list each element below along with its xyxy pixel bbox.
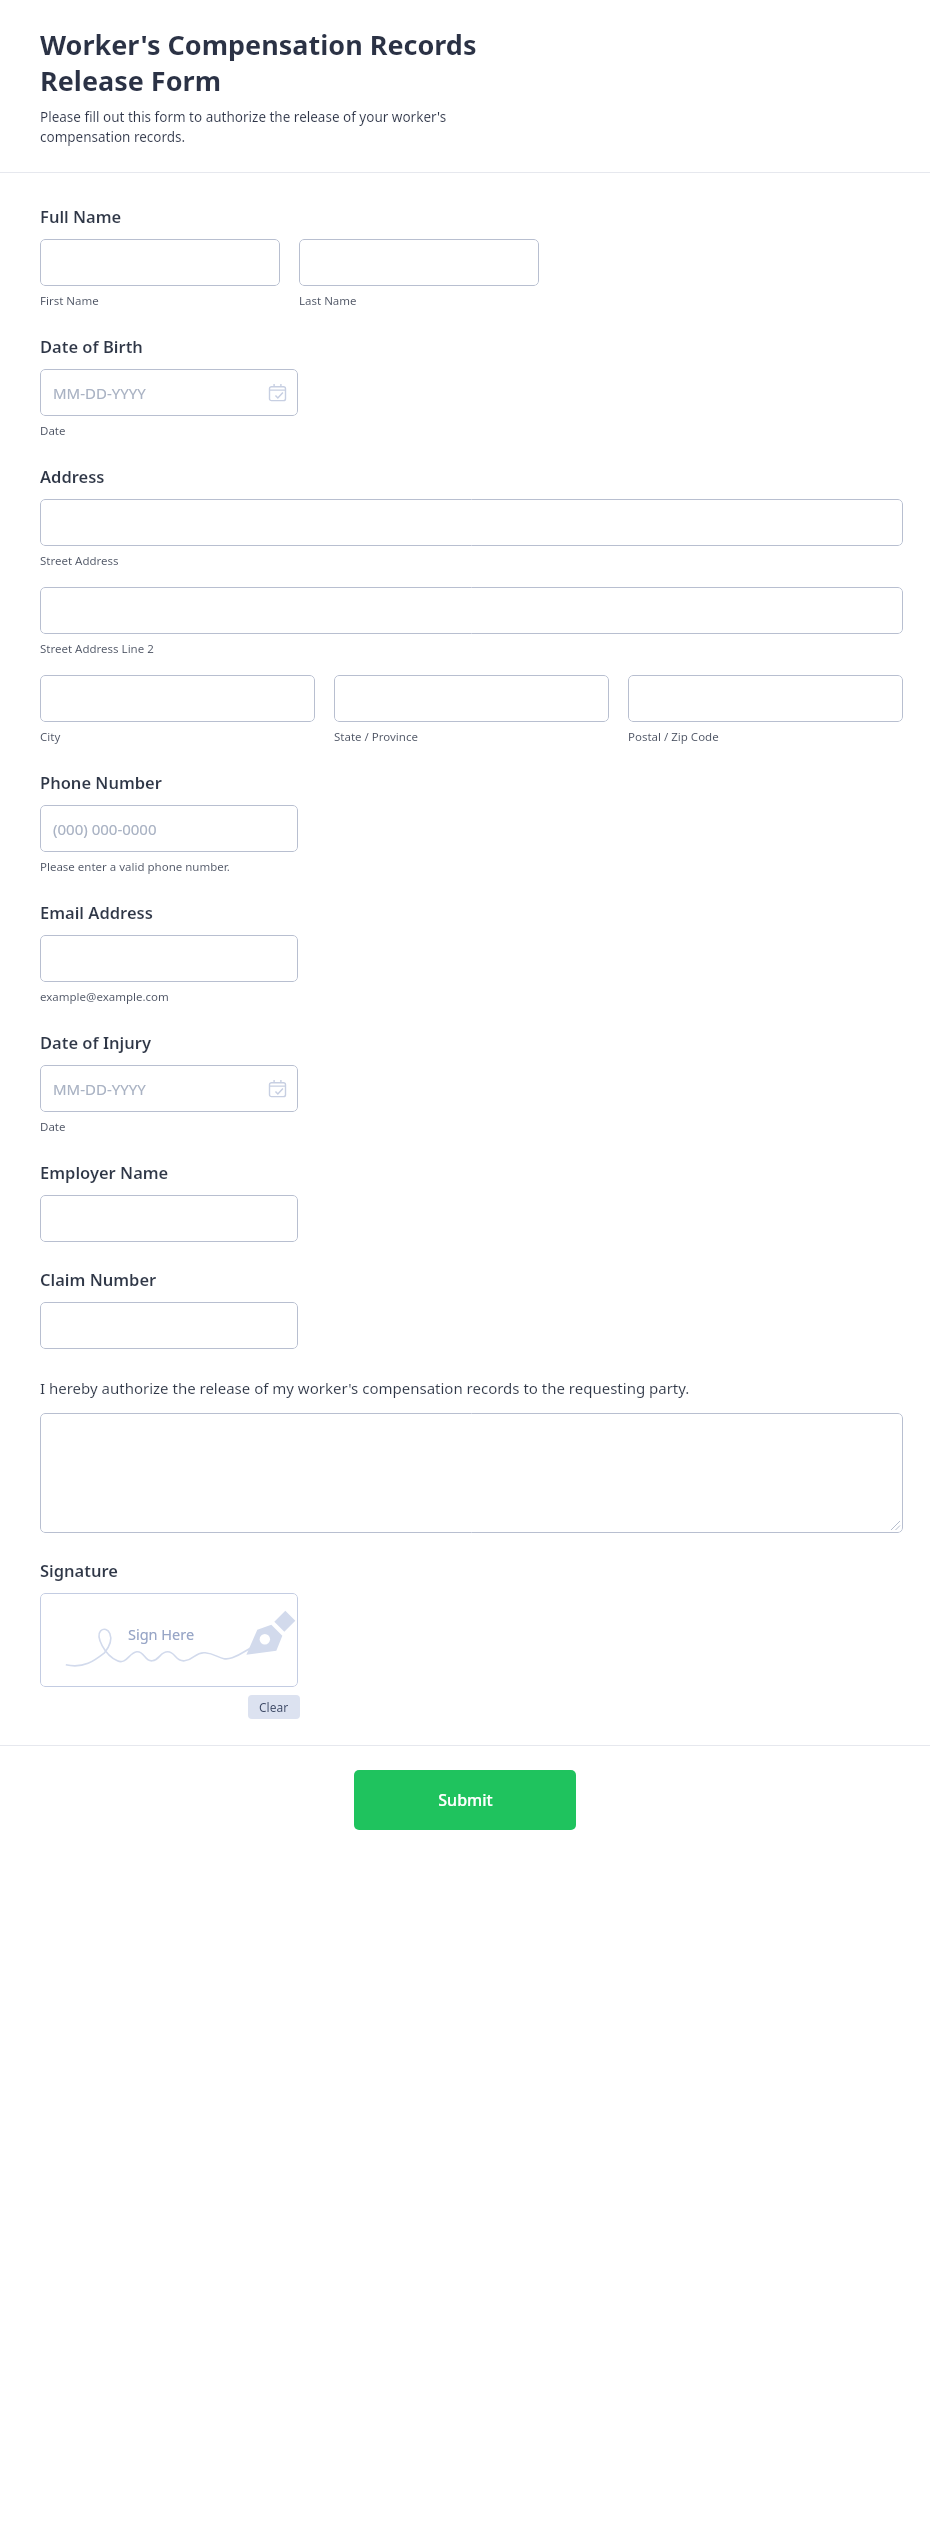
staticText: City	[40, 729, 61, 745]
button[interactable]	[334, 675, 609, 722]
staticText: Claim Number	[40, 1268, 157, 1290]
staticText: Signature	[40, 1559, 118, 1581]
staticText: Sign Here	[128, 1624, 195, 1644]
button[interactable]	[40, 499, 903, 546]
staticText: Worker's Compensation Records Release Fo…	[40, 26, 540, 99]
button[interactable]: Clear	[248, 1695, 300, 1719]
staticText: I hereby authorize the release of my wor…	[40, 1378, 903, 1398]
other: Pick date	[269, 384, 286, 401]
staticText: Date of Injury	[40, 1031, 151, 1053]
button[interactable]	[40, 1195, 298, 1242]
staticText: Street Address	[40, 553, 119, 569]
staticText: First Name	[40, 293, 99, 309]
button[interactable]	[299, 239, 539, 286]
staticText: Email Address	[40, 901, 153, 923]
staticText: Date	[40, 1119, 66, 1135]
button[interactable]	[628, 675, 903, 722]
staticText: Street Address Line 2	[40, 641, 154, 657]
button[interactable]	[40, 239, 280, 286]
staticText: Last Name	[299, 293, 357, 309]
other: Pick date	[269, 1080, 286, 1097]
staticText: Please fill out this form to authorize t…	[40, 108, 515, 146]
button[interactable]	[40, 1413, 903, 1533]
staticText: example@example.com	[40, 989, 169, 1005]
button[interactable]: Signature pad, sign here	[40, 1593, 298, 1687]
staticText: (000) 000-0000	[53, 819, 157, 839]
staticText: Address	[40, 465, 105, 487]
button[interactable]	[40, 587, 903, 634]
staticText: Phone Number	[40, 771, 162, 793]
staticText: Submit	[438, 1789, 493, 1811]
button[interactable]	[40, 935, 298, 982]
staticText: Employer Name	[40, 1161, 169, 1183]
button[interactable]: MM-DD-YYYY	[40, 1065, 298, 1112]
staticText: Postal / Zip Code	[628, 729, 719, 745]
button[interactable]: Submit	[354, 1770, 576, 1830]
staticText: Full Name	[40, 205, 122, 227]
staticText: Clear	[259, 1699, 289, 1715]
staticText: Date of Birth	[40, 335, 143, 357]
button[interactable]	[40, 675, 315, 722]
staticText: State / Province	[334, 729, 418, 745]
staticText: Please enter a valid phone number.	[40, 859, 230, 875]
button[interactable]	[40, 1302, 298, 1349]
staticText: MM-DD-YYYY	[53, 383, 146, 403]
button[interactable]: (000) 000-0000	[40, 805, 298, 852]
staticText: MM-DD-YYYY	[53, 1079, 146, 1099]
button[interactable]: MM-DD-YYYY	[40, 369, 298, 416]
staticText: Date	[40, 423, 66, 439]
